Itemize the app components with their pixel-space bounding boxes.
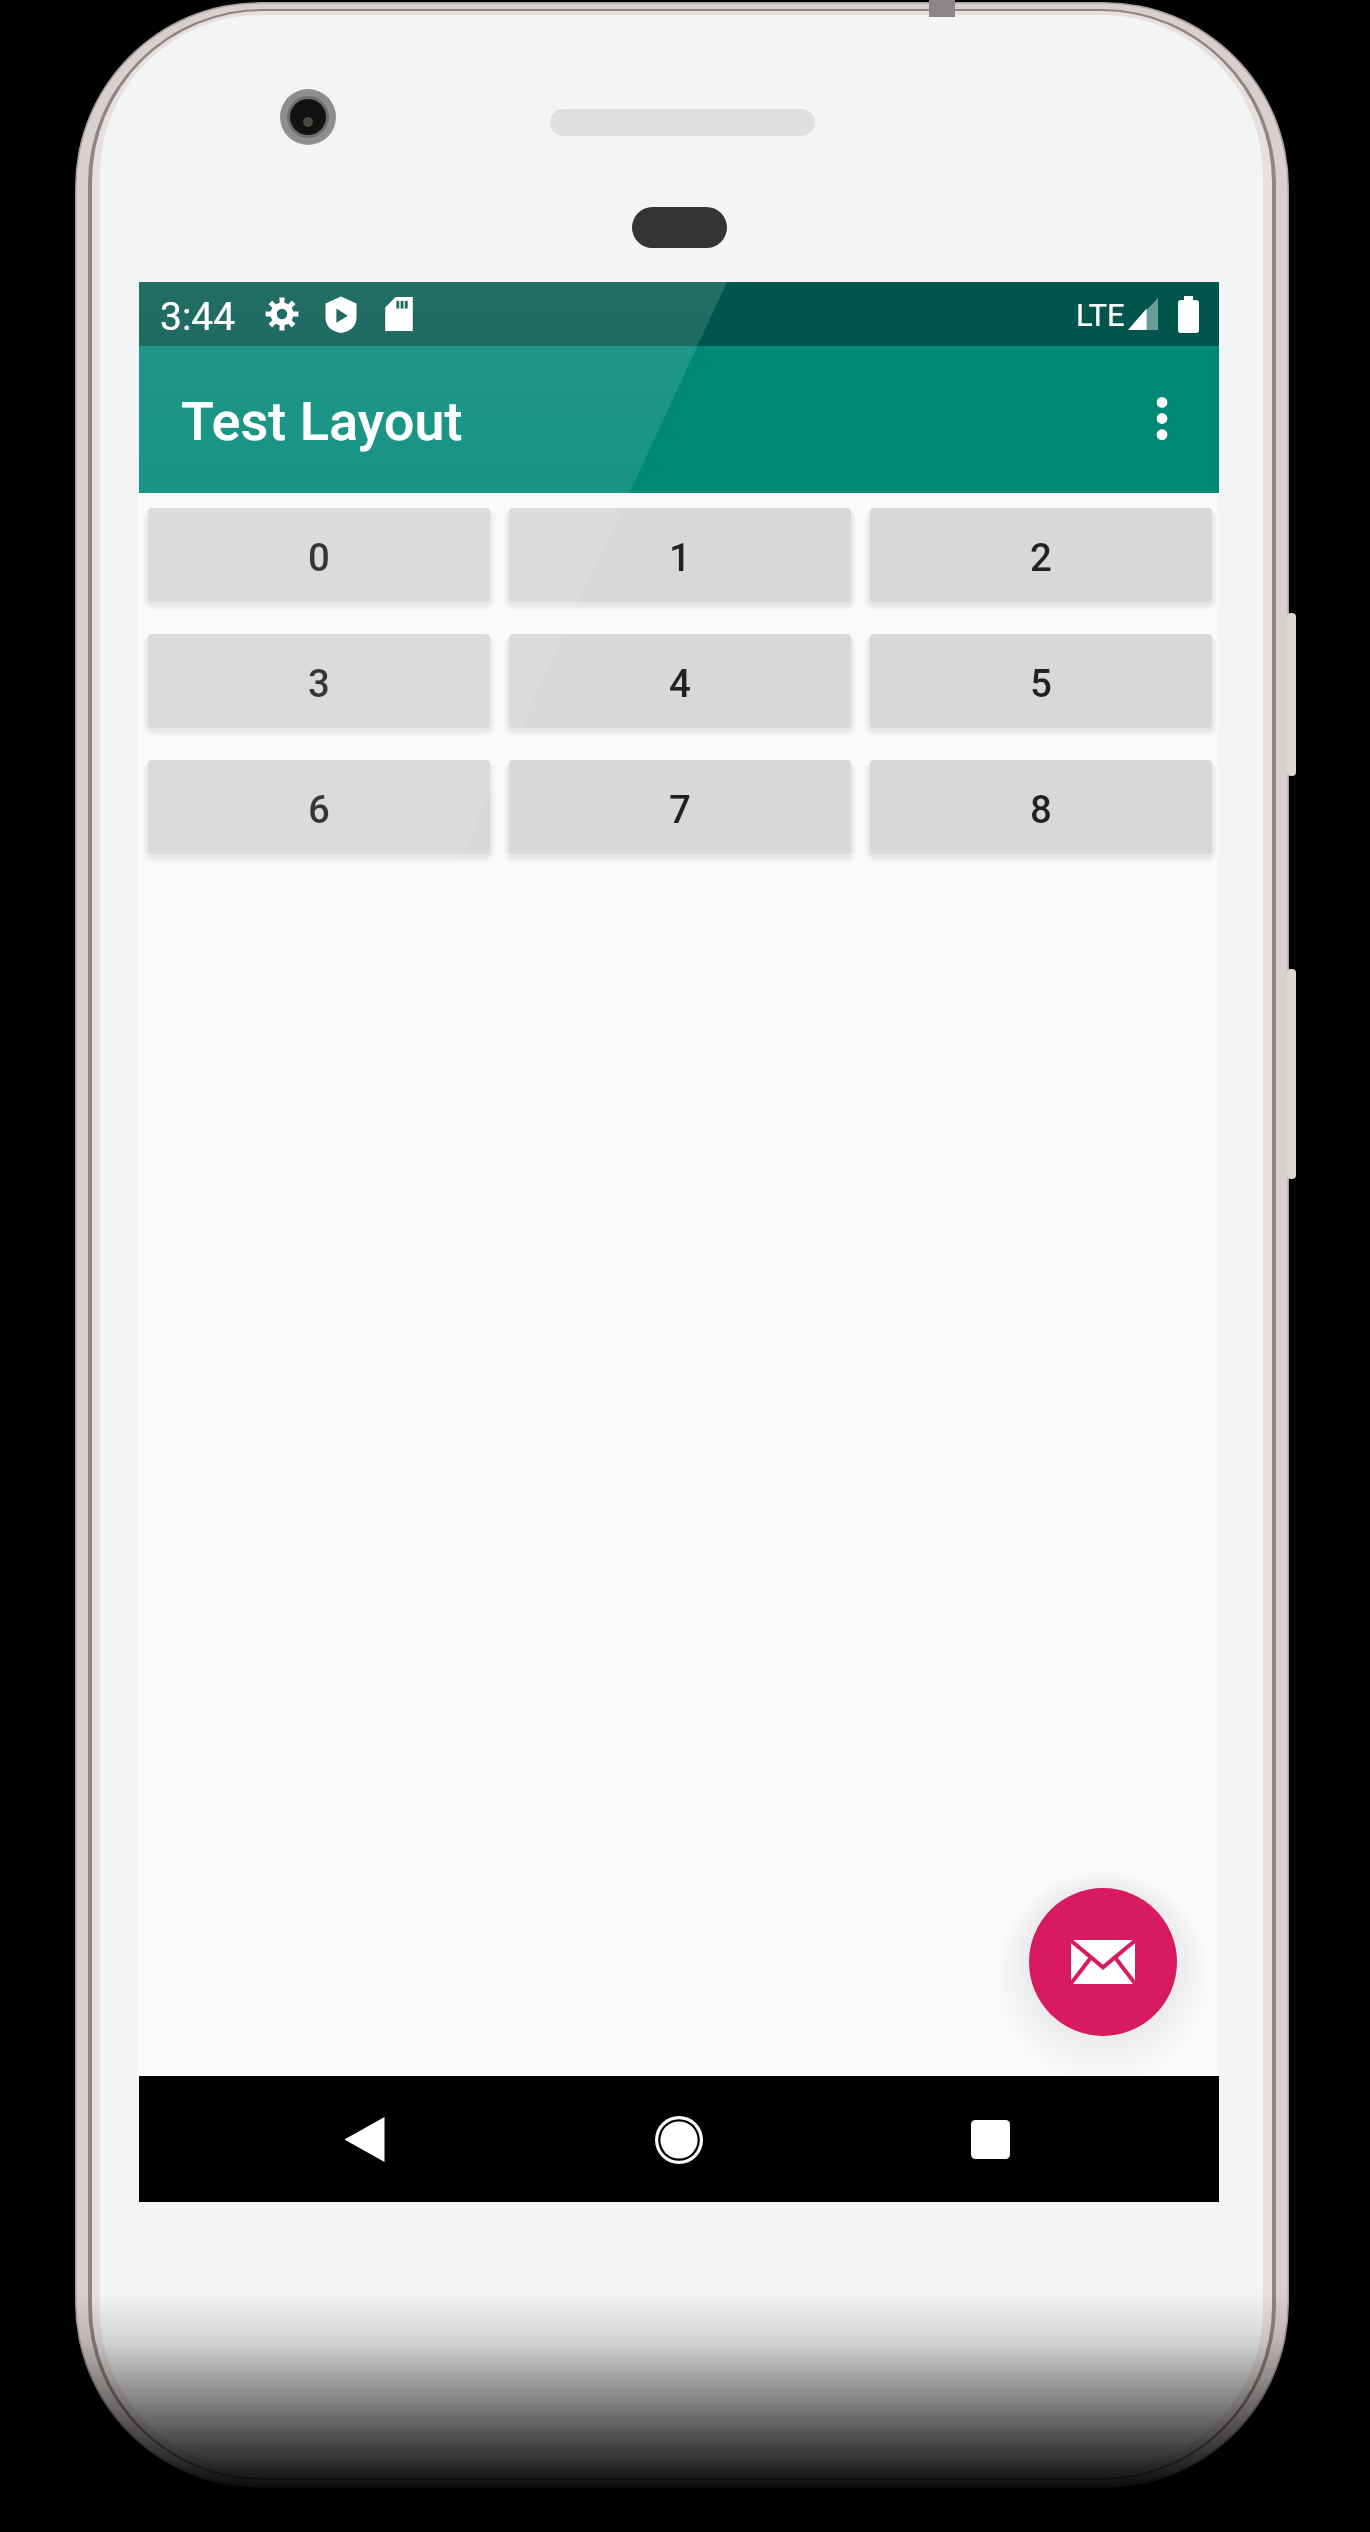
button[interactable]: Home — [655, 2116, 703, 2164]
staticText: 8 — [1030, 787, 1052, 832]
button[interactable]: 0 — [148, 508, 490, 602]
button[interactable]: Back — [346, 2118, 383, 2161]
button[interactable]: 7 — [509, 760, 851, 854]
staticText: 4 — [669, 661, 691, 706]
staticText: 2 — [1030, 535, 1052, 580]
staticText: Test Layout — [181, 390, 463, 453]
button[interactable]: 6 — [148, 760, 490, 854]
staticText: 6 — [308, 787, 330, 832]
button[interactable]: 4 — [509, 634, 851, 728]
staticText: 7 — [669, 787, 691, 832]
staticText: 0 — [308, 535, 330, 580]
staticText: 3 — [308, 661, 330, 706]
button[interactable]: 1 — [509, 508, 851, 602]
button[interactable]: Recents — [971, 2120, 1010, 2159]
staticText: LTE — [1076, 297, 1125, 333]
button[interactable]: Compose email — [1029, 1888, 1177, 2036]
staticText: 1 — [669, 535, 691, 580]
button[interactable]: More options — [1116, 373, 1207, 464]
button[interactable]: 2 — [870, 508, 1212, 602]
button[interactable]: 5 — [870, 634, 1212, 728]
staticText: 5 — [1030, 661, 1052, 706]
button[interactable]: 3 — [148, 634, 490, 728]
staticText: 3:44 — [160, 294, 236, 340]
button[interactable]: 8 — [870, 760, 1212, 854]
